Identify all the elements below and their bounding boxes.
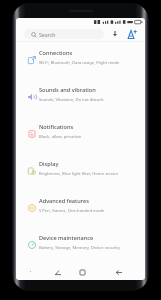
button[interactable]: Back — [107, 265, 131, 279]
staticText: S Pen, Games, One-handed mode — [39, 208, 105, 214]
button[interactable]: Search — [24, 29, 104, 39]
staticText: Brightness, Blue light filter, Home scre… — [39, 171, 118, 177]
staticText: Display — [39, 160, 59, 168]
staticText: Sounds, Vibration, Do not disturb — [39, 97, 104, 103]
button[interactable]: Home — [70, 265, 94, 279]
staticText: Connections — [39, 49, 73, 57]
staticText: Advanced features — [39, 197, 89, 205]
staticText: Search — [39, 31, 56, 38]
button[interactable]: Connections — [16, 42, 145, 79]
button[interactable]: Accessibility — [126, 28, 139, 41]
button[interactable]: Advanced features — [16, 190, 145, 227]
button[interactable]: Software update — [109, 28, 121, 40]
button[interactable]: Recents — [46, 265, 70, 279]
staticText: Device maintenance — [39, 234, 94, 242]
button[interactable]: Device maintenance — [16, 227, 145, 264]
button[interactable]: Sounds and vibration — [16, 79, 145, 116]
staticText: Wi-Fi, Bluetooth, Data usage, Flight mod… — [39, 60, 120, 66]
staticText: Battery, Storage, Memory, Device securit… — [39, 245, 120, 251]
staticText: Notifications — [39, 123, 74, 131]
staticText: Sounds and vibration — [39, 86, 96, 94]
staticText: Block, allow, prioritize — [39, 134, 82, 140]
button[interactable]: Notifications — [16, 116, 145, 153]
button[interactable]: Display — [16, 153, 145, 190]
